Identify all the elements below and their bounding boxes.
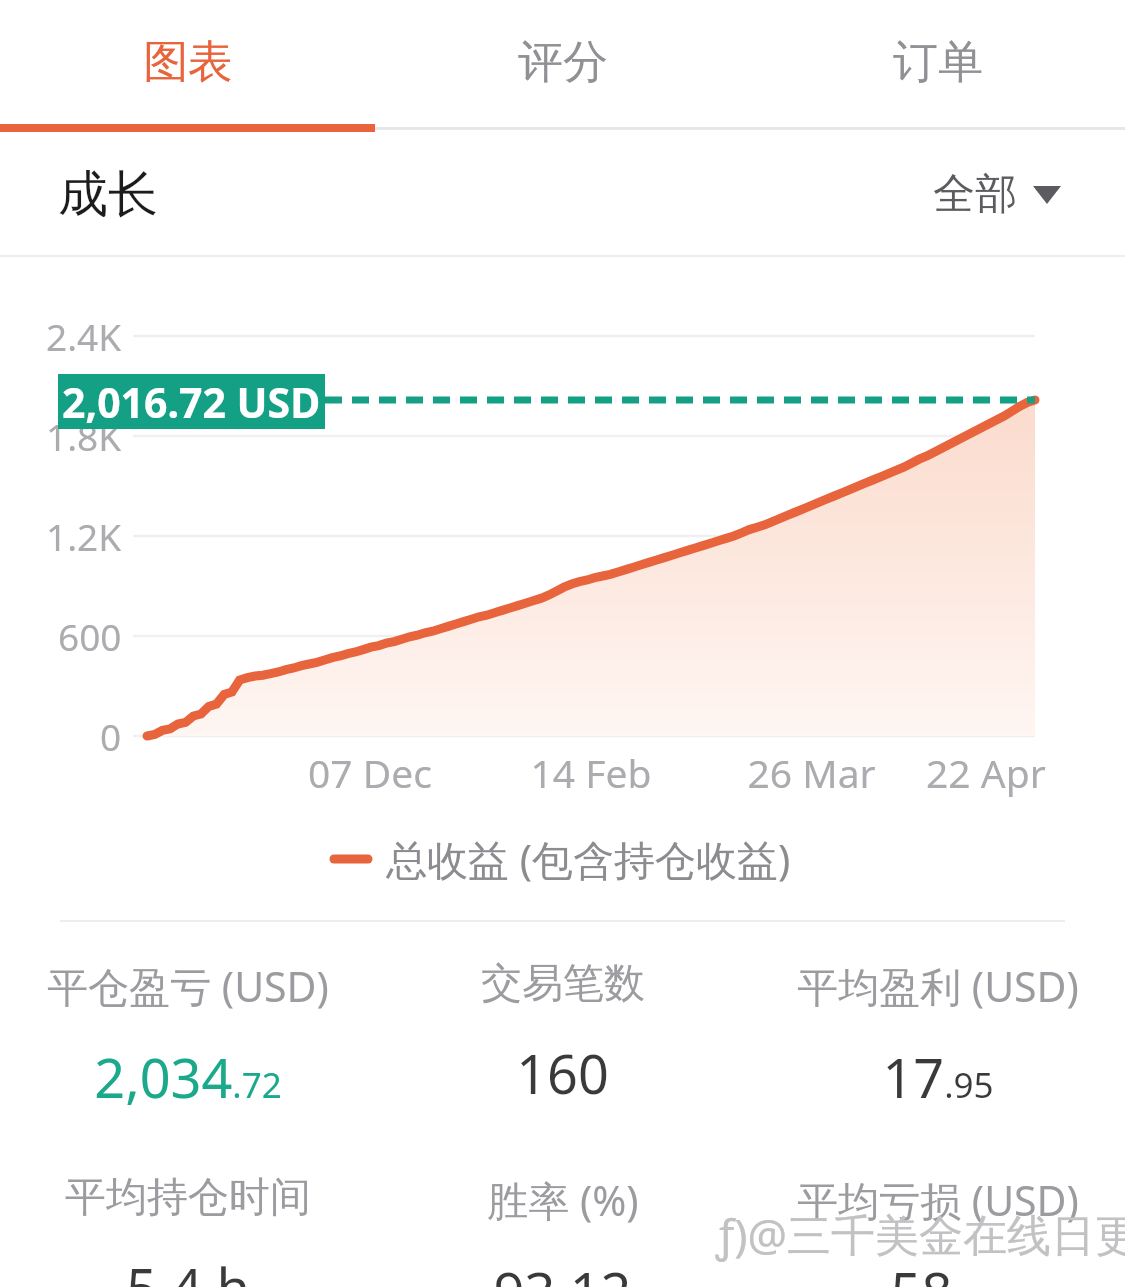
staticText: 订单 (893, 34, 983, 91)
staticText: 平均持仓时间 (65, 1172, 311, 1224)
staticText: 平均亏损 (USD) (797, 1172, 1079, 1228)
staticText: 160 (516, 1036, 609, 1110)
button[interactable]: 交易笔数 (375, 958, 750, 1110)
staticText: 胜率 (%) (487, 1172, 639, 1228)
staticText: 全部 (933, 168, 1017, 221)
button[interactable]: 平均持仓时间 (0, 1172, 375, 1287)
staticText: ƒ)@三千美金在线日更 (716, 1204, 1125, 1264)
staticText: 总收益 (包含持仓收益) (386, 831, 791, 887)
button[interactable]: 图表 (0, 0, 375, 124)
staticText: 交易笔数 (481, 958, 645, 1010)
staticText: 成长 (58, 163, 158, 226)
button[interactable]: 2,016.72 USD (58, 374, 325, 429)
button[interactable]: 平仓盈亏 (USD) (0, 958, 375, 1114)
staticText: -58.27 (873, 1254, 1002, 1287)
staticText: 图表 (143, 34, 233, 91)
staticText: 平仓盈亏 (USD) (47, 958, 329, 1014)
staticText: 5.4 h (126, 1250, 250, 1287)
button[interactable]: 胜率 (%) (375, 1172, 750, 1287)
staticText: 93.12 (493, 1254, 632, 1287)
staticText: 2,016.72 USD (62, 374, 321, 429)
button[interactable]: 平均盈利 (USD) (750, 958, 1125, 1114)
staticText: 评分 (518, 34, 608, 91)
button[interactable]: 评分 (375, 0, 750, 124)
button[interactable]: 总收益 (包含持仓收益) (334, 831, 791, 887)
button[interactable]: 订单 (750, 0, 1125, 124)
button[interactable]: 平均亏损 (USD) (750, 1172, 1125, 1287)
button[interactable]: 全部 (925, 160, 1069, 229)
staticText: 17.95 (882, 1040, 994, 1114)
other: Select period (1033, 186, 1061, 204)
staticText: 平均盈利 (USD) (797, 958, 1079, 1014)
staticText: 2,034.72 (94, 1040, 282, 1114)
